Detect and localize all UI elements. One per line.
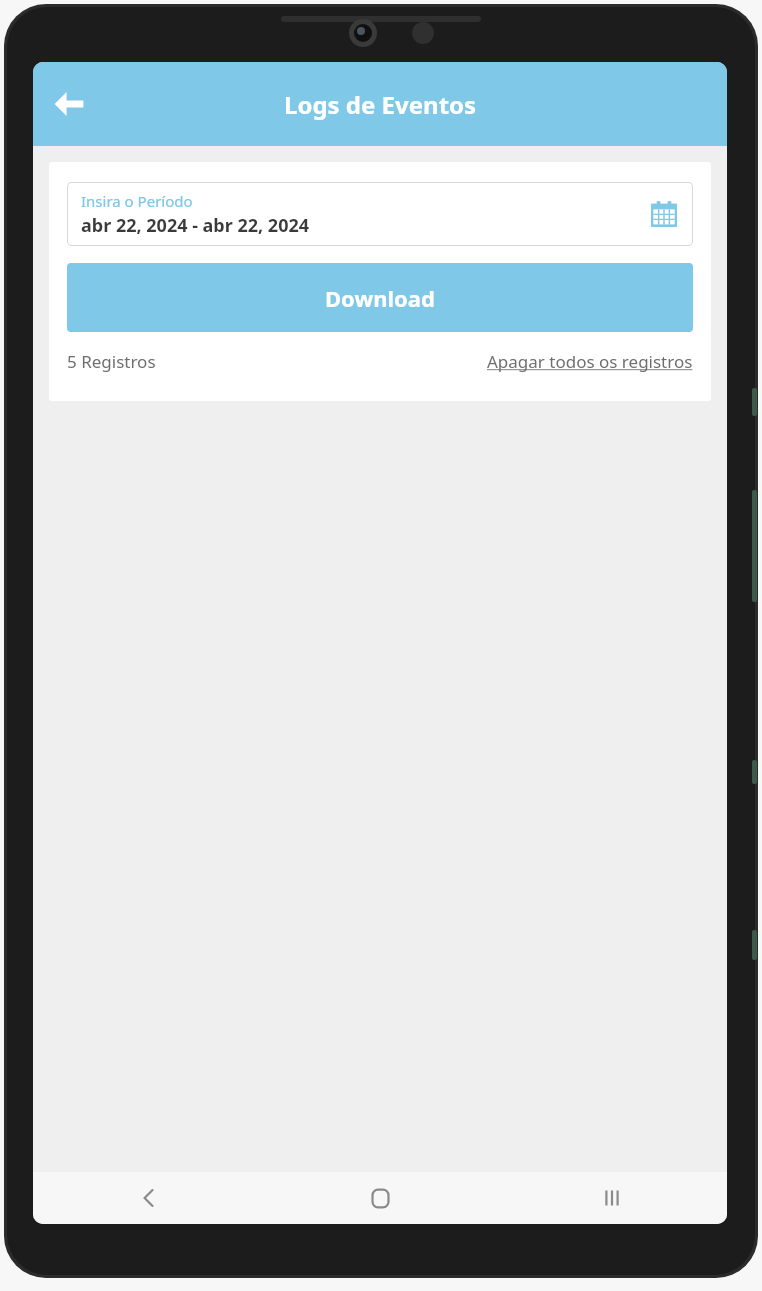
- button[interactable]: Home: [265, 1172, 496, 1224]
- staticText: 5 Registros: [67, 350, 156, 373]
- button[interactable]: Recent apps: [496, 1172, 727, 1224]
- button[interactable]: Back: [43, 78, 95, 130]
- button[interactable]: Insira o Período: [67, 182, 693, 246]
- staticText: Logs de Eventos: [284, 88, 477, 121]
- staticText: Insira o Período: [81, 191, 193, 211]
- staticText: abr 22, 2024 - abr 22, 2024: [81, 213, 310, 238]
- staticText: Download: [325, 283, 435, 313]
- staticText: Apagar todos os registros: [487, 350, 693, 373]
- button[interactable]: Apagar todos os registros: [487, 350, 693, 373]
- button[interactable]: Download: [67, 263, 693, 332]
- button[interactable]: Back: [33, 1172, 265, 1224]
